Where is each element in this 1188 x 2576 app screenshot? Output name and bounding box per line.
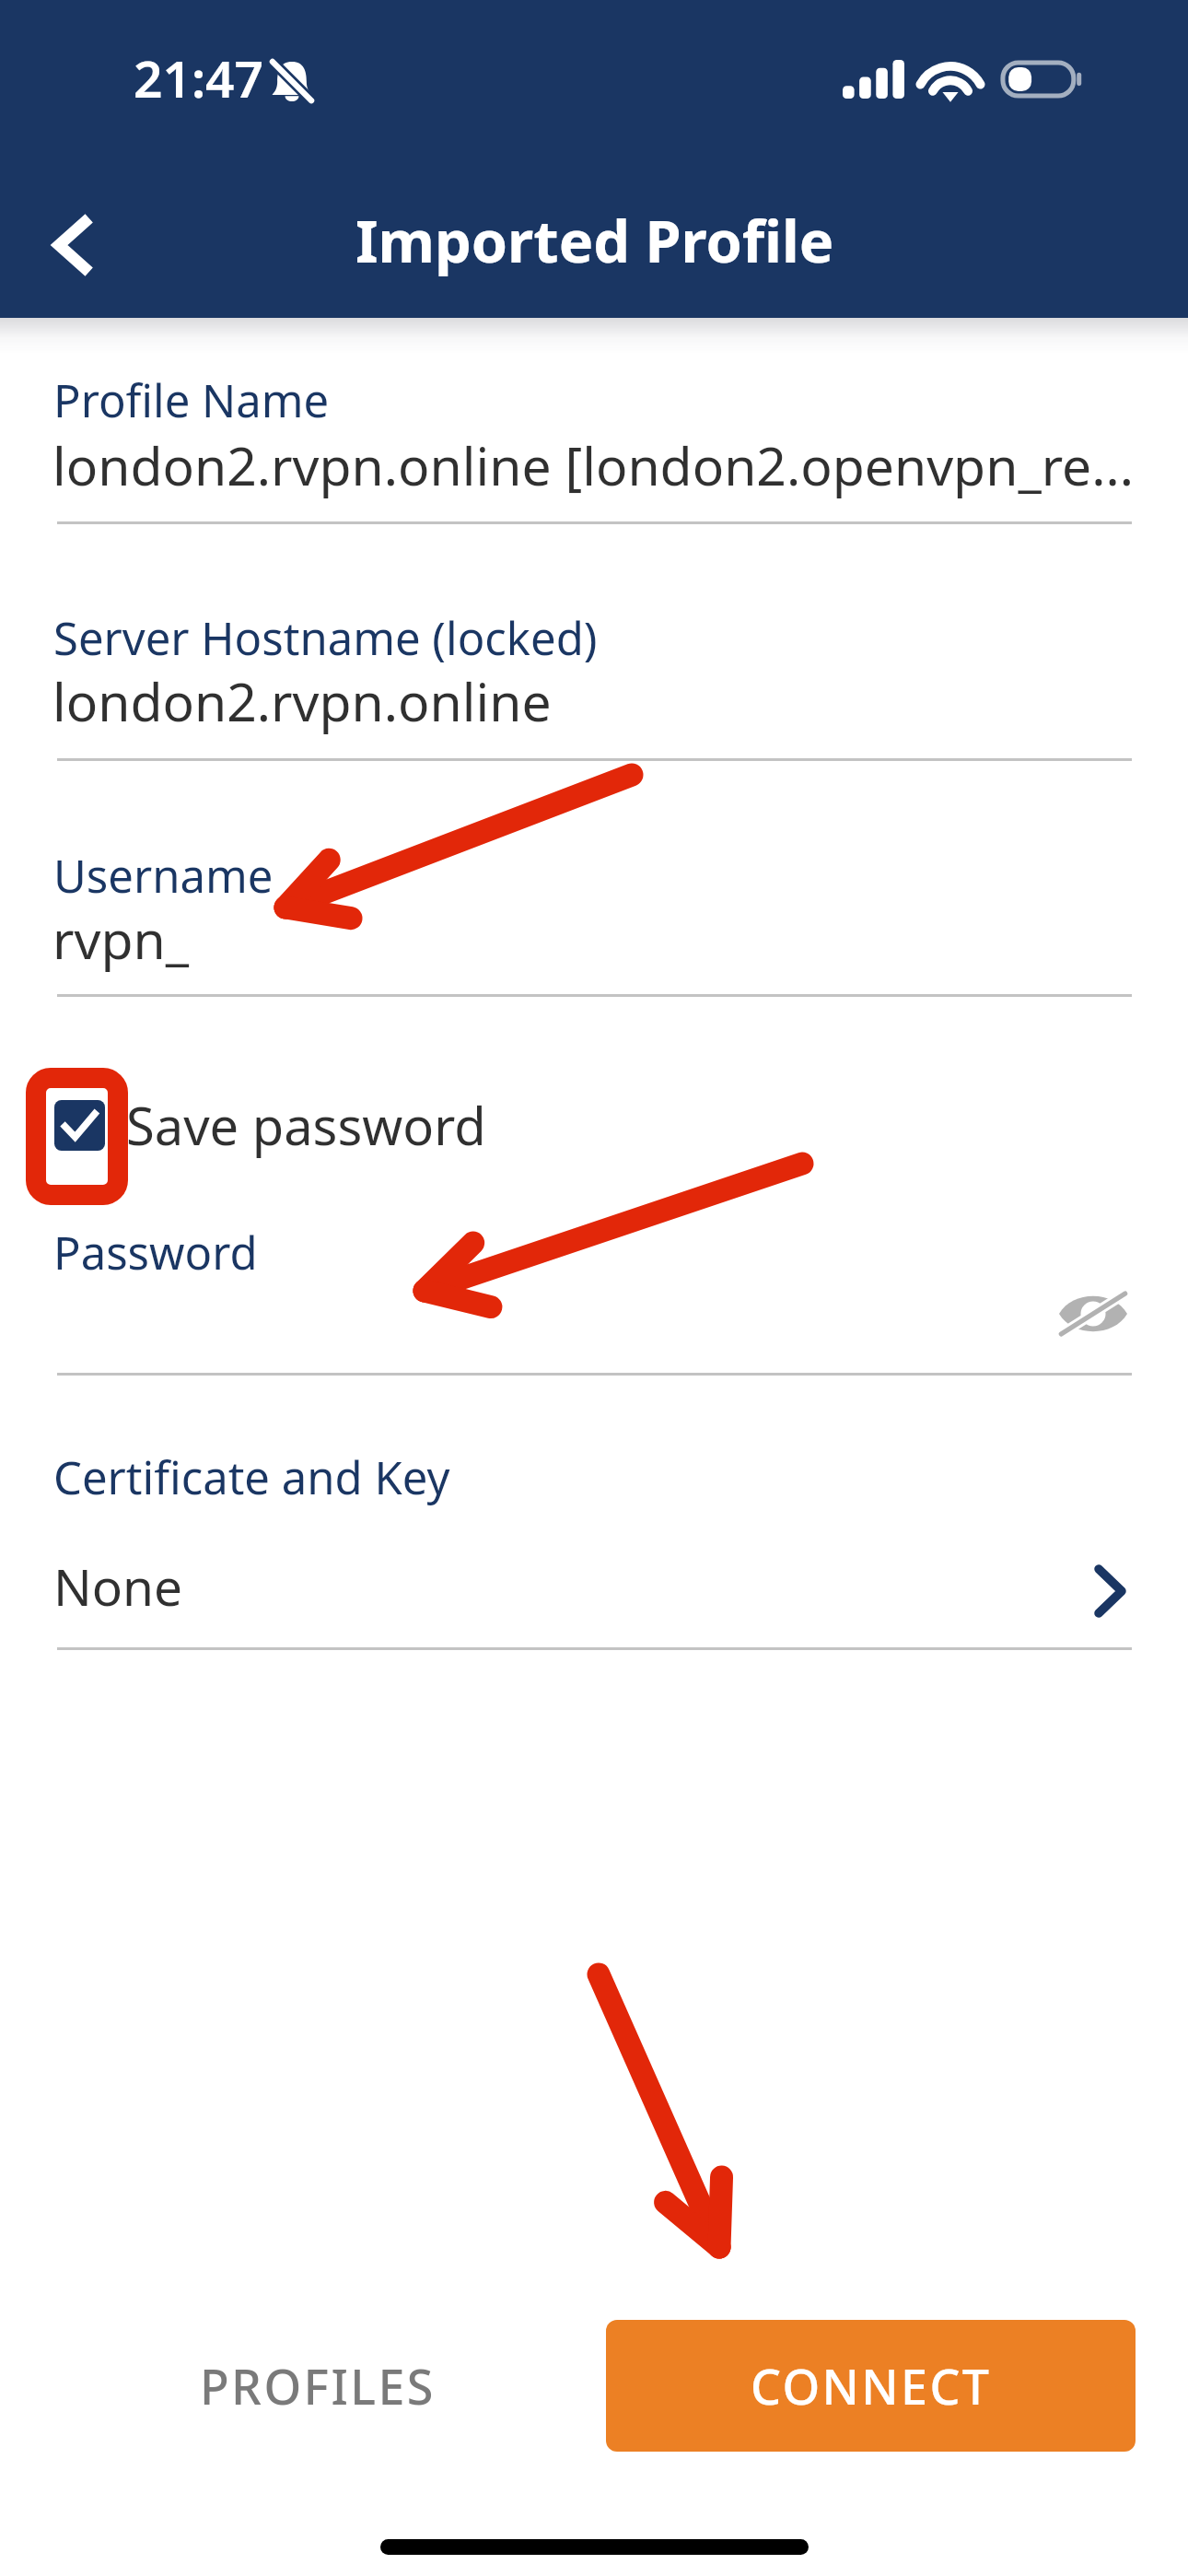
staticText: Certificate and Key (53, 1446, 450, 1508)
button[interactable]: Save password (52, 1088, 486, 1162)
staticText: Profile Name (53, 369, 330, 431)
button[interactable]: CONNECT (606, 2320, 1136, 2452)
staticText: Imported Profile (355, 201, 834, 280)
staticText: 21:47 (134, 43, 264, 112)
staticText: PROFILES (200, 2353, 436, 2418)
button[interactable]: Show password (1044, 1265, 1142, 1363)
staticText: rvpn_ (52, 903, 190, 975)
staticText: london2.rvpn.online [london2.openvpn_re.… (52, 429, 1135, 501)
button[interactable]: Back (15, 188, 129, 302)
staticText: Server Hostname (locked) (53, 607, 598, 669)
button[interactable]: None (57, 1529, 1132, 1625)
staticText: london2.rvpn.online (52, 665, 552, 737)
staticText: CONNECT (751, 2353, 992, 2418)
staticText: Save password (126, 1090, 486, 1160)
staticText: Username (53, 845, 274, 907)
button[interactable]: PROFILES (175, 2320, 460, 2451)
staticText: None (53, 1551, 183, 1621)
staticText: Password (53, 1222, 258, 1283)
